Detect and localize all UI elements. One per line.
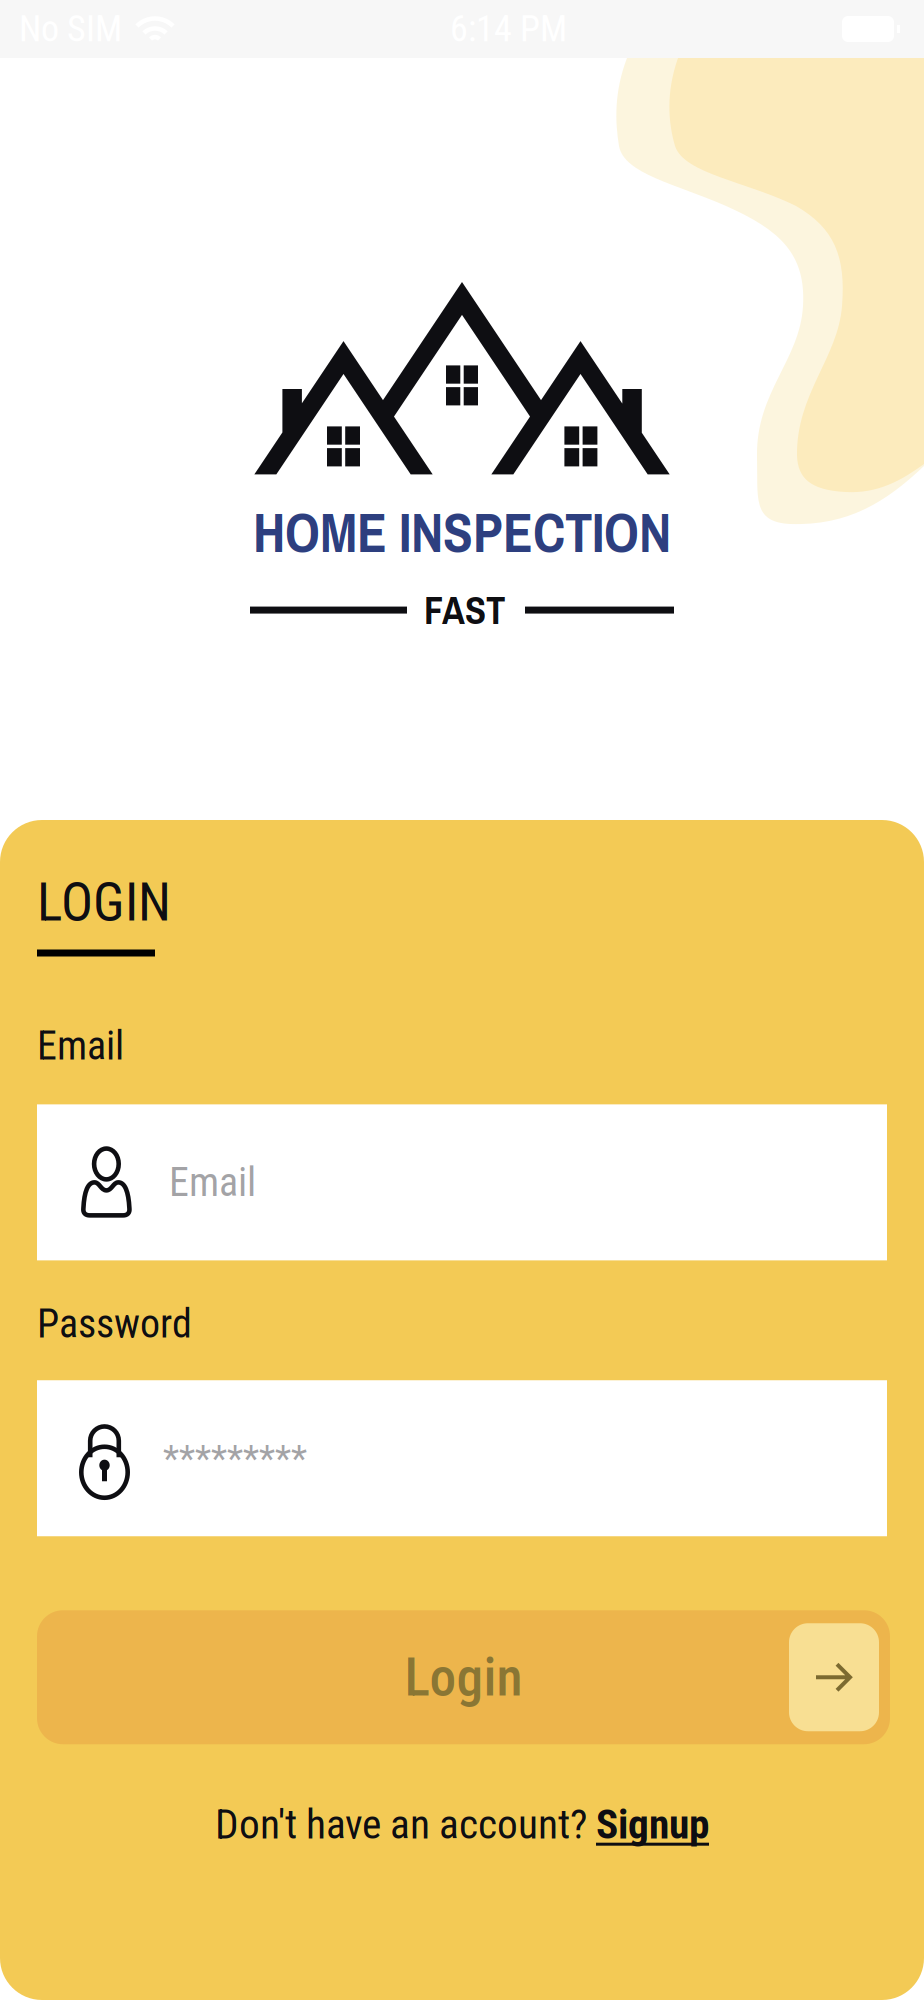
staticText: HOME INSPECTION xyxy=(253,495,671,569)
staticText: ********* xyxy=(163,1436,307,1480)
staticText: Don't have an account? xyxy=(215,1800,596,1849)
staticText: Login xyxy=(404,1646,522,1708)
staticText: LOGIN xyxy=(37,871,171,933)
staticText: Email xyxy=(169,1159,256,1206)
staticText: Signup xyxy=(596,1800,709,1849)
staticText: Password xyxy=(37,1300,192,1347)
button[interactable]: Don't have an account? xyxy=(37,1800,887,1849)
staticText: Email xyxy=(37,1022,124,1069)
staticText: FAST xyxy=(424,584,505,636)
button[interactable]: Login xyxy=(37,1610,890,1744)
staticText: No SIM xyxy=(19,8,122,50)
